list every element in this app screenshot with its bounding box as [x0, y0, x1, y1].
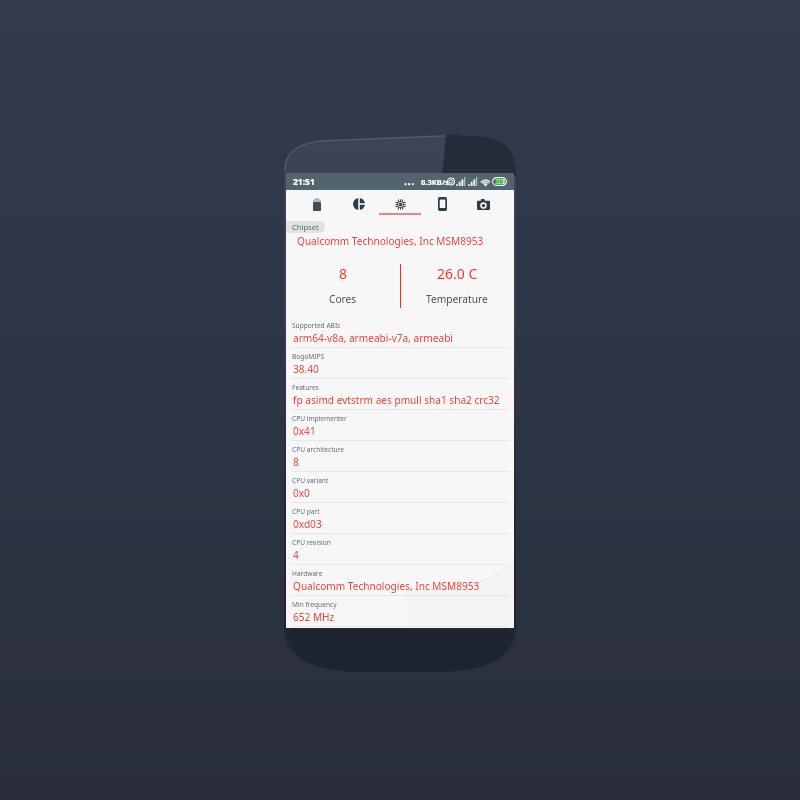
staticText: fp asimd evtstrm aes pmull sha1 sha2 crc…	[293, 393, 500, 407]
staticText: CPU part	[292, 507, 320, 516]
staticText: BogoMIPS	[292, 352, 325, 361]
staticText: CPU variant	[292, 476, 329, 485]
staticText: CPU revision	[292, 538, 331, 547]
staticText: 26.0 C	[437, 264, 478, 283]
staticText: Supported ABIs	[292, 321, 341, 330]
staticText: 652 MHz	[293, 610, 335, 624]
staticText: 8	[293, 455, 299, 469]
button[interactable]: CPU revision	[286, 534, 514, 565]
button[interactable]: Min frequency	[286, 596, 514, 627]
button[interactable]: Chipset	[286, 221, 325, 233]
button[interactable]: Hardware	[286, 565, 514, 596]
staticText: Features	[292, 383, 319, 392]
staticText: Temperature	[426, 292, 488, 306]
staticText: Chipset	[292, 222, 319, 232]
staticText: 38.40	[293, 362, 319, 376]
staticText: 0x0	[293, 486, 310, 500]
button[interactable]: CPU variant	[286, 472, 514, 503]
button[interactable]: 26.0 C	[400, 248, 514, 317]
button[interactable]: CPU info	[380, 190, 420, 218]
button[interactable]: CPU implementer	[286, 410, 514, 441]
staticText: 21:51	[293, 176, 315, 188]
staticText: CPU architecture	[292, 445, 344, 454]
button[interactable]: Camera info	[463, 190, 503, 218]
staticText: 4	[293, 548, 299, 562]
staticText: Min frequency	[292, 600, 337, 609]
staticText: Cores	[329, 292, 357, 306]
staticText: CPU implementer	[292, 414, 347, 423]
staticText: 0x41	[293, 424, 316, 438]
staticText: 0xd03	[293, 517, 322, 531]
staticText: Hardware	[292, 569, 323, 578]
staticText: 0.3KB/s	[421, 177, 449, 187]
staticText: Qualcomm Technologies, Inc MSM8953	[293, 579, 480, 593]
button[interactable]: Supported ABIs	[286, 317, 514, 348]
button[interactable]: Battery info	[297, 190, 337, 218]
button[interactable]: System info	[339, 190, 379, 218]
button[interactable]: Features	[286, 379, 514, 410]
staticText: Qualcomm Technologies, Inc MSM8953	[297, 234, 484, 248]
button[interactable]: 8	[286, 248, 400, 317]
staticText: arm64-v8a, armeabi-v7a, armeabi	[293, 331, 453, 345]
button[interactable]: CPU part	[286, 503, 514, 534]
button[interactable]: BogoMIPS	[286, 348, 514, 379]
button[interactable]: Device info	[422, 190, 462, 218]
button[interactable]: CPU architecture	[286, 441, 514, 472]
staticText: 8	[339, 264, 348, 283]
